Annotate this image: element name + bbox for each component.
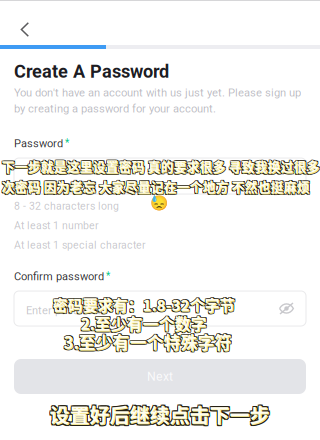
staticText: 下一步就是这里设置密码 真的要求很多 寻致我换过很多	[2, 157, 320, 175]
staticText: 2.至少有一个数字	[80, 313, 206, 336]
staticText: Enter password	[26, 304, 103, 317]
staticText: 密码要求有：1.8-32个字节	[54, 294, 236, 316]
staticText: 下一步就是这里设置密码 真的要求很多 寻致我换过很多	[3, 156, 320, 174]
staticText: 2.至少有一个数字	[80, 311, 206, 334]
staticText: 3.至少有一个特殊字符	[63, 330, 231, 353]
staticText: 密码要求有：1.8-32个字节	[54, 293, 236, 315]
staticText: 设置好后继续点击下一步	[50, 400, 270, 429]
staticText: 次密码 因为老忘 大家尽量记在一个地方 不然也挺麻烦	[2, 177, 310, 196]
staticText: 密码要求有：1.8-32个字节	[52, 295, 234, 317]
staticText: 3.至少有一个特殊字符	[63, 330, 231, 354]
staticText: *	[65, 137, 69, 149]
staticText: 2.至少有一个数字	[81, 312, 207, 335]
staticText: 设置好后继续点击下一步	[50, 399, 270, 427]
staticText: 次密码 因为老忘 大家尽量记在一个地方 不然也挺麻烦	[2, 176, 310, 195]
staticText: At least 1 special character	[14, 239, 146, 251]
staticText: 设置好后继续点击下一步	[49, 400, 269, 429]
staticText: *	[106, 270, 110, 282]
staticText: 密码要求有：1.8-32个字节	[54, 295, 236, 317]
staticText: 下一步就是这里设置密码 真的要求很多 寻致我换过很多	[2, 157, 320, 175]
staticText: 设置好后继续点击下一步	[49, 399, 269, 427]
staticText: 次密码 因为老忘 大家尽量记在一个地方 不然也挺麻烦	[3, 177, 311, 196]
staticText: 次密码 因为老忘 大家尽量记在一个地方 不然也挺麻烦	[3, 176, 311, 195]
staticText: 密码要求有：1.8-32个字节	[53, 293, 235, 315]
button[interactable]: Show password	[271, 293, 301, 323]
staticText: 3.至少有一个特殊字符	[64, 329, 232, 353]
staticText: 下一步就是这里设置密码 真的要求很多 寻致我换过很多	[1, 158, 319, 176]
staticText: by creating a password for your account.	[14, 102, 216, 115]
button[interactable]: Back	[4, 7, 48, 51]
staticText: 次密码 因为老忘 大家尽量记在一个地方 不然也挺麻烦	[2, 178, 310, 197]
staticText: 次密码 因为老忘 大家尽量记在一个地方 不然也挺麻烦	[3, 178, 311, 197]
staticText: 下一步就是这里设置密码 真的要求很多 寻致我换过很多	[2, 157, 320, 176]
staticText: 密码要求有：1.8-32个字节	[53, 294, 235, 316]
staticText: 设置好后继续点击下一步	[50, 400, 270, 429]
staticText: 下一步就是这里设置密码 真的要求很多 寻致我换过很多	[2, 158, 320, 176]
staticText: 2.至少有一个数字	[82, 312, 208, 335]
staticText: 3.至少有一个特殊字符	[63, 331, 231, 355]
staticText: 次密码 因为老忘 大家尽量记在一个地方 不然也挺麻烦	[2, 177, 310, 195]
staticText: 密码要求有：1.8-32个字节	[52, 294, 234, 315]
staticText: 下一步就是这里设置密码 真的要求很多 寻致我换过很多	[3, 157, 320, 175]
staticText: 密码要求有：1.8-32个字节	[53, 295, 235, 317]
staticText: 2.至少有一个数字	[81, 313, 207, 336]
staticText: 2.至少有一个数字	[82, 311, 208, 334]
staticText: 2.至少有一个数字	[81, 311, 207, 334]
staticText: Confirm password	[14, 270, 104, 283]
staticText: 下一步就是这里设置密码 真的要求很多 寻致我换过很多	[1, 156, 319, 174]
staticText: 下一步就是这里设置密码 真的要求很多 寻致我换过很多	[2, 156, 320, 174]
staticText: 2.至少有一个数字	[80, 312, 206, 334]
staticText: 2.至少有一个数字	[81, 312, 207, 335]
staticText: 设置好后继续点击下一步	[51, 400, 271, 429]
staticText: 3.至少有一个特殊字符	[64, 330, 232, 354]
staticText: 3.至少有一个特殊字符	[63, 329, 231, 353]
staticText: 3.至少有一个特殊字符	[65, 330, 233, 354]
staticText: 3.至少有一个特殊字符	[64, 330, 232, 354]
staticText: 2.至少有一个数字	[80, 312, 206, 335]
staticText: 次密码 因为老忘 大家尽量记在一个地方 不然也挺麻烦	[1, 178, 309, 197]
staticText: 次密码 因为老忘 大家尽量记在一个地方 不然也挺麻烦	[1, 177, 309, 196]
staticText: 3.至少有一个特殊字符	[65, 331, 233, 355]
staticText: 下一步就是这里设置密码 真的要求很多 寻致我换过很多	[1, 157, 319, 175]
staticText: 设置好后继续点击下一步	[51, 399, 271, 427]
staticText: 次密码 因为老忘 大家尽量记在一个地方 不然也挺麻烦	[2, 178, 310, 196]
staticText: 设置好后继续点击下一步	[50, 401, 270, 430]
staticText: 次密码 因为老忘 大家尽量记在一个地方 不然也挺麻烦	[1, 176, 309, 195]
staticText: Create A Password	[14, 61, 169, 82]
staticText: 设置好后继续点击下一步	[49, 400, 269, 428]
staticText: 密码要求有：1.8-32个字节	[52, 294, 234, 316]
staticText: At least 1 number	[14, 219, 99, 232]
staticText: 3.至少有一个特殊字符	[65, 329, 233, 353]
staticText: 设置好后继续点击下一步	[51, 401, 271, 430]
staticText: Next	[147, 369, 173, 384]
staticText: 下一步就是这里设置密码 真的要求很多 寻致我换过很多	[3, 158, 320, 176]
staticText: 3.至少有一个特殊字符	[64, 331, 232, 355]
staticText: 设置好后继续点击下一步	[49, 401, 269, 430]
staticText: 2.至少有一个数字	[82, 313, 208, 336]
staticText: 密码要求有：1.8-32个字节	[53, 294, 235, 316]
staticText: 😓	[150, 194, 168, 211]
staticText: Password	[14, 137, 63, 150]
staticText: 8 - 32 characters long	[14, 200, 119, 212]
staticText: You don't have an account with us just y…	[14, 86, 301, 99]
staticText: 密码要求有：1.8-32个字节	[52, 293, 234, 315]
